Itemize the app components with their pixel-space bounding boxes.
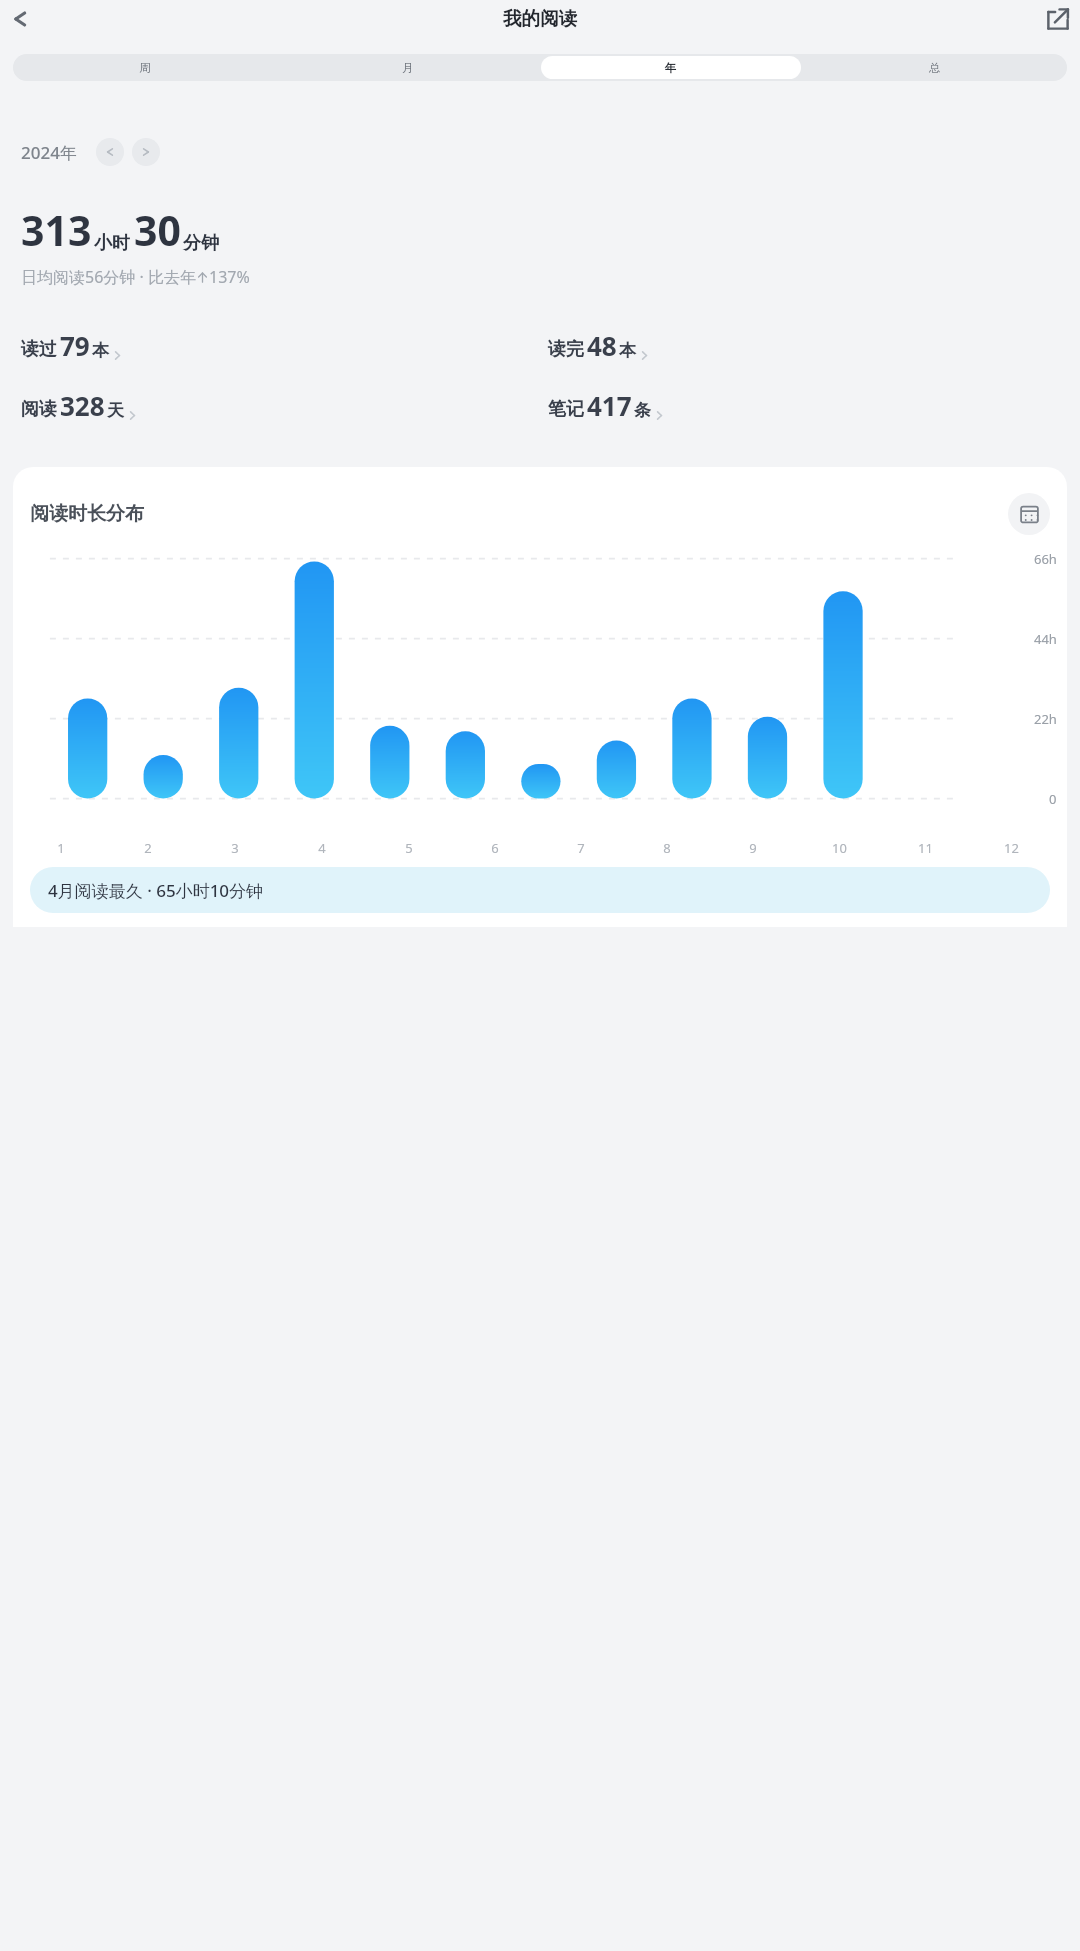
staticText: 44h — [1034, 630, 1057, 648]
button[interactable]: Previous year — [96, 138, 124, 166]
staticText: 我的阅读 — [503, 7, 577, 30]
staticText: 7 — [577, 839, 585, 857]
button[interactable]: Calendar — [1008, 493, 1050, 535]
button[interactable]: Back — [4, 4, 34, 34]
staticText: 总 — [929, 61, 941, 75]
staticText: 周 — [139, 61, 151, 75]
button[interactable]: Next year — [132, 138, 160, 166]
staticText: 条 — [634, 400, 651, 421]
staticText: 3 — [231, 839, 239, 857]
staticText: 0 — [1049, 790, 1057, 808]
staticText: 10 — [832, 839, 847, 857]
button[interactable]: Share — [1045, 6, 1071, 32]
staticText: 79 — [60, 328, 90, 363]
staticText: 2024年 — [21, 141, 77, 164]
button[interactable]: 4月阅读最久 · 65小时10分钟 — [30, 867, 1050, 913]
staticText: 8 — [663, 839, 671, 857]
staticText: 阅读时长分布 — [30, 502, 144, 526]
staticText: 年 — [665, 61, 677, 75]
staticText: 读完 — [548, 338, 584, 361]
staticText: 417 — [587, 388, 632, 423]
staticText: 4 — [318, 839, 326, 857]
staticText: 4月阅读最久 · 65小时10分钟 — [48, 879, 264, 902]
staticText: 读过 — [21, 338, 57, 361]
staticText: 48 — [587, 328, 617, 363]
button[interactable]: 月 — [278, 56, 537, 79]
staticText: 笔记 — [548, 398, 584, 421]
staticText: 313 — [21, 202, 92, 258]
staticText: 66h — [1034, 550, 1057, 568]
staticText: 分钟 — [183, 232, 219, 255]
button[interactable]: 阅读 — [21, 388, 540, 423]
staticText: 月 — [402, 61, 414, 75]
staticText: 本 — [619, 340, 636, 361]
staticText: 137% — [209, 266, 250, 288]
staticText: 日均阅读56分钟 · 比去年 — [21, 266, 196, 288]
button[interactable]: 读过 — [21, 328, 540, 363]
button[interactable]: 年 — [541, 56, 801, 79]
staticText: 5 — [405, 839, 413, 857]
staticText: 328 — [60, 388, 105, 423]
staticText: 1 — [57, 839, 65, 857]
staticText: 9 — [749, 839, 757, 857]
button[interactable]: 总 — [805, 56, 1065, 79]
staticText: 阅读 — [21, 398, 57, 421]
staticText: 6 — [491, 839, 499, 857]
staticText: 2 — [144, 839, 152, 857]
staticText: 本 — [92, 340, 109, 361]
staticText: 30 — [134, 202, 181, 258]
button[interactable]: 周 — [15, 56, 274, 79]
staticText: 11 — [918, 839, 933, 857]
button[interactable]: 笔记 — [548, 388, 1080, 423]
staticText: 22h — [1034, 710, 1057, 728]
button[interactable]: 读完 — [548, 328, 1080, 363]
staticText: 12 — [1004, 839, 1019, 857]
staticText: 小时 — [94, 232, 130, 255]
staticText: 天 — [107, 400, 124, 421]
